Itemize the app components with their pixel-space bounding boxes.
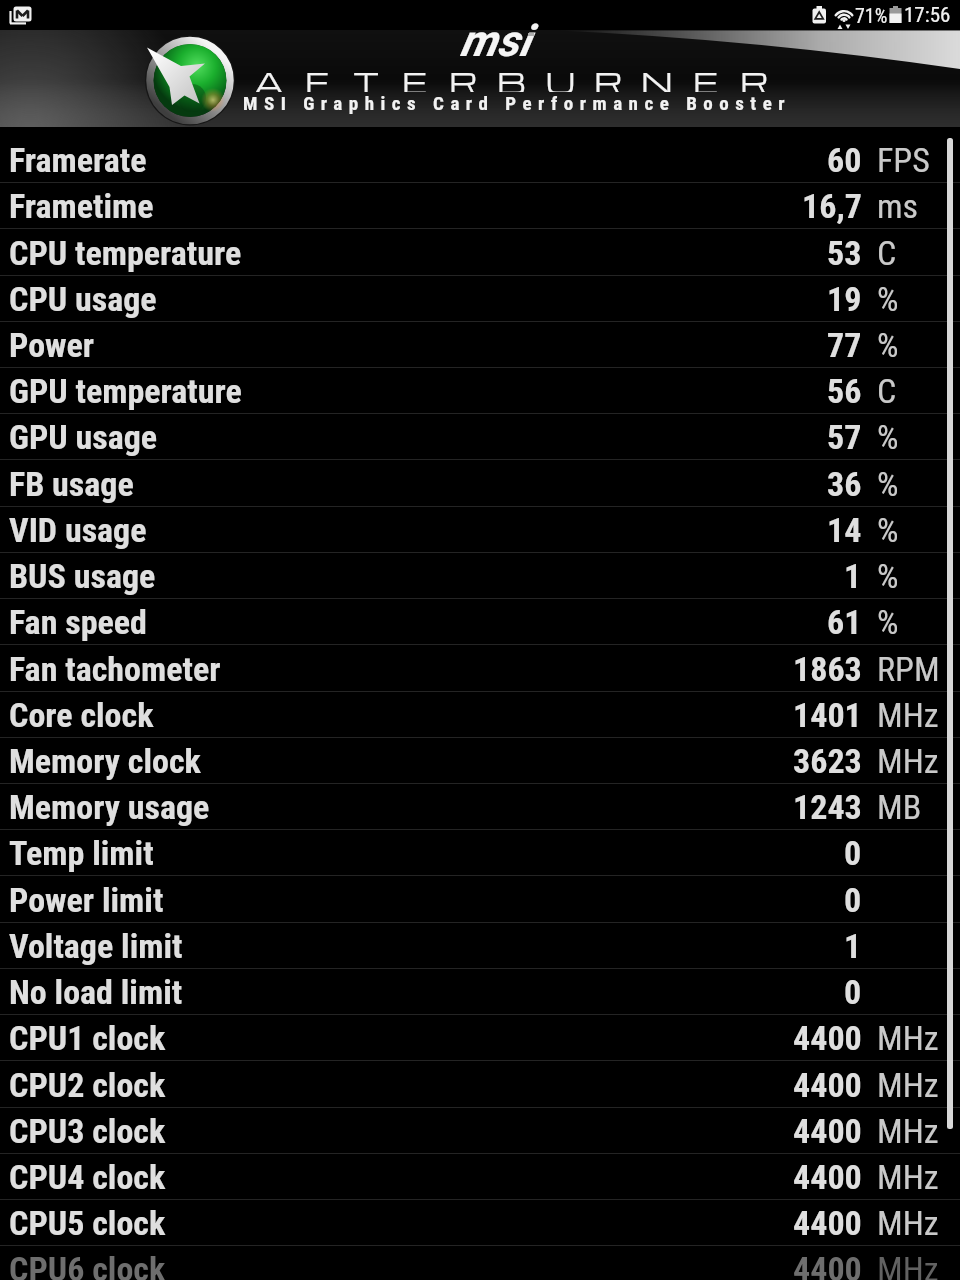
staticText: F [305, 62, 329, 92]
staticText: BUS usage [9, 556, 156, 596]
staticText: 4400 [793, 1203, 862, 1243]
staticText: 1243 [793, 787, 862, 827]
button[interactable]: Memory clock [0, 738, 960, 784]
staticText: 57 [827, 417, 862, 457]
button[interactable]: Framerate [0, 137, 960, 183]
staticText: 1863 [793, 649, 862, 689]
staticText: 60 [827, 140, 862, 180]
staticText: % [877, 464, 899, 504]
staticText: R [740, 62, 769, 92]
staticText: % [877, 510, 899, 550]
staticText: U [546, 62, 575, 92]
staticText: CPU1 clock [9, 1018, 166, 1058]
staticText: Framerate [9, 140, 147, 180]
staticText: 0 [844, 972, 862, 1012]
staticText: Temp limit [9, 833, 154, 873]
staticText: VID usage [9, 510, 147, 550]
staticText: Memory usage [9, 787, 210, 827]
staticText: ms [877, 186, 919, 226]
button[interactable]: CPU3 clock [0, 1108, 960, 1154]
staticText: 1 [844, 926, 862, 966]
staticText: 0 [844, 880, 862, 920]
staticText: 1401 [793, 695, 862, 735]
staticText: MHz [877, 695, 939, 735]
staticText: R [594, 62, 623, 92]
button[interactable]: FB usage [0, 461, 960, 507]
button[interactable]: CPU6 clock [0, 1246, 960, 1280]
staticText: 61 [827, 602, 862, 642]
button[interactable]: Power [0, 322, 960, 368]
staticText: CPU temperature [9, 233, 242, 273]
staticText: A [254, 62, 284, 92]
staticText: 19 [827, 279, 862, 319]
staticText: RPM [877, 649, 940, 689]
button[interactable]: CPU2 clock [0, 1062, 960, 1108]
staticText: % [877, 279, 899, 319]
staticText: msi [460, 15, 531, 67]
staticText: 4400 [793, 1111, 862, 1151]
staticText: 71% [855, 4, 888, 27]
staticText: MB [877, 787, 922, 827]
staticText: Fan speed [9, 602, 147, 642]
staticText: MSI Graphics Card Performance Booster [243, 92, 792, 114]
button[interactable]: BUS usage [0, 553, 960, 599]
staticText: Core clock [9, 695, 154, 735]
staticText: C [877, 233, 897, 273]
button[interactable]: CPU4 clock [0, 1154, 960, 1200]
staticText: % [877, 602, 899, 642]
staticText: MHz [877, 1203, 939, 1243]
staticText: MHz [877, 1111, 939, 1151]
button[interactable]: CPU5 clock [0, 1200, 960, 1246]
button[interactable]: CPU temperature [0, 230, 960, 276]
staticText: Power limit [9, 880, 164, 920]
staticText: FB usage [9, 464, 134, 504]
staticText: GPU temperature [9, 371, 242, 411]
button[interactable]: Temp limit [0, 830, 960, 876]
staticText: CPU2 clock [9, 1065, 166, 1105]
staticText: 1 [844, 556, 862, 596]
button[interactable]: GPU temperature [0, 368, 960, 414]
staticText: Power [9, 325, 95, 365]
button[interactable]: Power limit [0, 877, 960, 923]
staticText: MHz [877, 1157, 939, 1197]
staticText: Frametime [9, 186, 154, 226]
staticText: 77 [827, 325, 862, 365]
staticText: 4400 [793, 1249, 862, 1280]
staticText: 0 [844, 833, 862, 873]
button[interactable]: Fan tachometer [0, 646, 960, 692]
staticText: CPU3 clock [9, 1111, 166, 1151]
staticText: E [402, 62, 427, 92]
staticText: B [497, 62, 526, 92]
button[interactable]: Core clock [0, 692, 960, 738]
staticText: No load limit [9, 972, 183, 1012]
staticText: 4400 [793, 1018, 862, 1058]
button[interactable]: VID usage [0, 507, 960, 553]
staticText: MHz [877, 1065, 939, 1105]
staticText: R [449, 62, 478, 92]
button[interactable]: CPU1 clock [0, 1015, 960, 1061]
staticText: 16,7 [802, 186, 862, 226]
button[interactable]: No load limit [0, 969, 960, 1015]
staticText: CPU5 clock [9, 1203, 166, 1243]
staticText: CPU usage [9, 279, 157, 319]
staticText: 14 [827, 510, 862, 550]
button[interactable]: Fan speed [0, 599, 960, 645]
staticText: 3623 [793, 741, 862, 781]
staticText: MHz [877, 741, 939, 781]
staticText: Fan tachometer [9, 649, 221, 689]
staticText: T [353, 62, 380, 92]
button[interactable]: Frametime [0, 183, 960, 229]
staticText: CPU4 clock [9, 1157, 166, 1197]
staticText: 56 [827, 371, 862, 411]
staticText: Memory clock [9, 741, 201, 781]
staticText: 4400 [793, 1157, 862, 1197]
staticText: 4400 [793, 1065, 862, 1105]
staticText: 36 [827, 464, 862, 504]
staticText: FPS [877, 140, 930, 180]
button[interactable]: CPU usage [0, 276, 960, 322]
button[interactable]: GPU usage [0, 414, 960, 460]
button[interactable]: Memory usage [0, 784, 960, 830]
button[interactable]: Voltage limit [0, 923, 960, 969]
staticText: C [877, 371, 897, 411]
staticText: 17:56 [904, 3, 951, 28]
